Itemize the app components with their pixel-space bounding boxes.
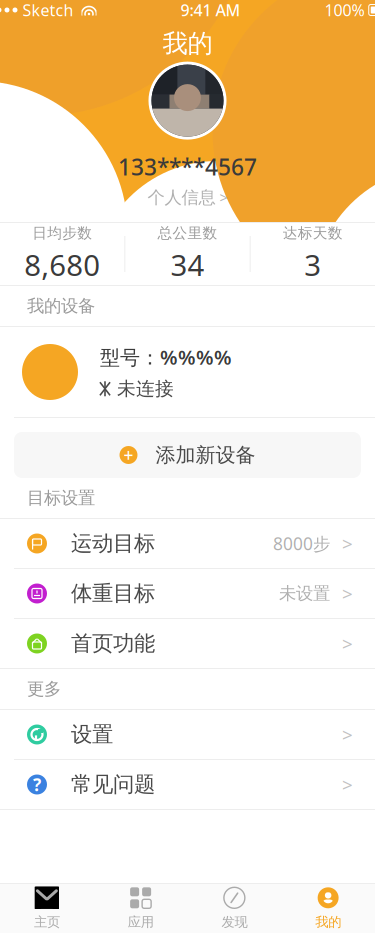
staticText: 运动目标 [71, 530, 155, 557]
staticText: 设置 [71, 721, 113, 748]
staticText: + [123, 443, 133, 466]
staticText: 34 [170, 245, 204, 284]
button[interactable]: 运动目标 [0, 519, 375, 568]
staticText: > [342, 722, 353, 747]
staticText: > [219, 188, 227, 207]
staticText: 8000步 [273, 532, 330, 555]
staticText: 日均步数 [32, 224, 92, 242]
staticText: 100% [324, 0, 364, 21]
staticText: 总公里数 [157, 224, 217, 242]
staticText: 常见问题 [71, 771, 155, 798]
staticText: 目标设置 [27, 487, 95, 509]
button[interactable]: 个人信息 [137, 182, 237, 210]
staticText: 型号：%%%% [100, 344, 232, 370]
button[interactable]: 设置 [0, 710, 375, 759]
staticText: 未连接 [117, 377, 174, 400]
staticText: 133****4567 [118, 152, 257, 182]
button[interactable]: ? [0, 760, 375, 809]
staticText: 发现 [221, 914, 247, 930]
button[interactable]: 体重目标 [0, 569, 375, 618]
staticText: > [342, 581, 353, 606]
staticText: ? [33, 773, 41, 796]
button[interactable]: + [14, 432, 361, 478]
staticText: Sketch [22, 0, 73, 21]
button[interactable]: 发现 [187, 884, 281, 933]
staticText: > [342, 631, 353, 656]
staticText: > [342, 531, 353, 556]
staticText: 个人信息 [147, 187, 215, 208]
staticText: 达标天数 [283, 224, 343, 242]
button[interactable]: 我的 [281, 884, 375, 933]
staticText: 首页功能 [71, 630, 155, 657]
button[interactable]: 首页功能 [0, 619, 375, 668]
staticText: 体重目标 [71, 580, 155, 607]
staticText: 主页 [34, 914, 60, 930]
staticText: 未设置 [279, 583, 330, 604]
staticText: 应用 [128, 914, 154, 930]
staticText: > [342, 772, 353, 797]
staticText: 9:41 AM [180, 0, 240, 21]
button[interactable]: 主页 [0, 884, 94, 933]
button[interactable]: 应用 [94, 884, 188, 933]
staticText: 更多 [27, 678, 61, 700]
staticText: 我的 [315, 914, 341, 930]
staticText: 我的 [162, 28, 212, 59]
staticText: 我的设备 [27, 295, 95, 317]
staticText: 添加新设备 [155, 443, 255, 467]
staticText: 8,680 [24, 245, 100, 284]
staticText: 3 [304, 245, 321, 284]
